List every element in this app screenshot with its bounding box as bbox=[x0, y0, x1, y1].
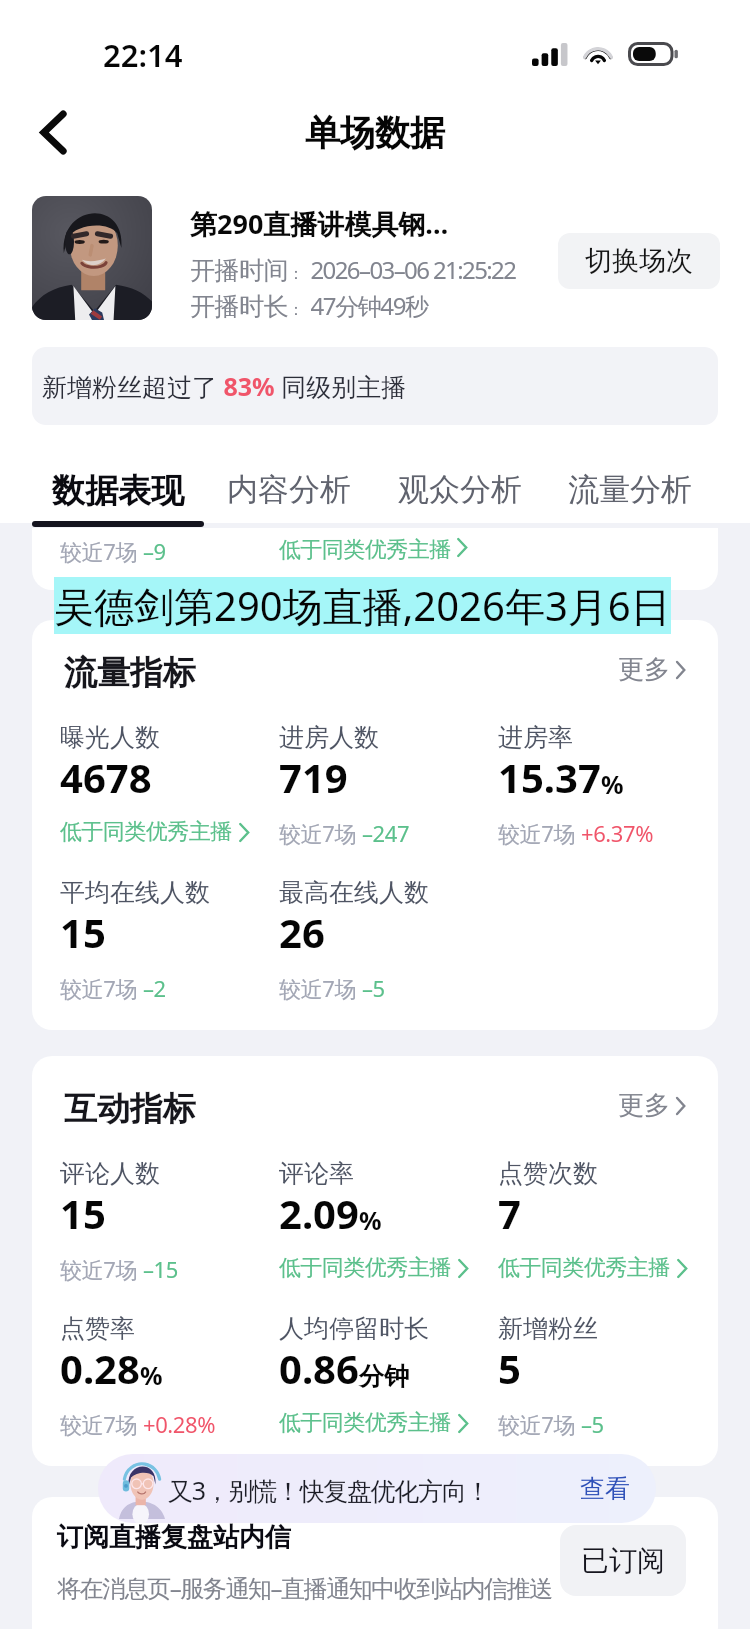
staticText: 进房人数 bbox=[279, 722, 379, 753]
staticText: 低于同类优秀主播 bbox=[279, 536, 451, 564]
staticText: 15.37 bbox=[498, 750, 601, 804]
button[interactable]: 低于同类优秀主播 bbox=[279, 1254, 468, 1282]
staticText: 开播时长： 47分钟49秒 bbox=[190, 289, 428, 322]
staticText: 人均停留时长 bbox=[279, 1313, 429, 1344]
button[interactable]: 新增粉丝超过了 83% 同级别主播 bbox=[32, 347, 718, 425]
staticText: 低于同类优秀主播 bbox=[498, 1254, 670, 1282]
staticText: 已订阅 bbox=[581, 1543, 665, 1578]
staticText: 内容分析 bbox=[227, 470, 351, 509]
staticText: 更多 bbox=[618, 1089, 670, 1122]
staticText: 数据表现 bbox=[52, 470, 184, 512]
staticText: 新增粉丝 bbox=[498, 1313, 598, 1344]
staticText: 5 bbox=[498, 1341, 521, 1395]
staticText: –5 bbox=[581, 1409, 604, 1439]
staticText: 查看 bbox=[580, 1473, 630, 1504]
staticText: 4678 bbox=[60, 750, 152, 804]
staticText: 开播时间： 2026–03–06 21:25:22 bbox=[190, 253, 516, 286]
staticText: 第290直播讲模具钢… bbox=[190, 205, 449, 242]
staticText: 互动指标 bbox=[64, 1088, 196, 1130]
staticText: 分钟 bbox=[359, 1361, 409, 1392]
button[interactable]: 内容分析 bbox=[203, 470, 375, 528]
button[interactable]: 低于同类优秀主播 bbox=[498, 1254, 687, 1282]
staticText: 15 bbox=[60, 905, 106, 959]
staticText: % bbox=[601, 767, 624, 801]
staticText: 更多 bbox=[618, 653, 670, 686]
staticText: –2 bbox=[143, 973, 166, 1003]
staticText: 单场数据 bbox=[0, 111, 750, 155]
staticText: 进房率 bbox=[498, 722, 573, 753]
staticText: 吴德剑第290场直播,2026年3月6日 bbox=[54, 578, 671, 633]
staticText: 将在消息页–服务通知–直播通知中收到站内信推送 bbox=[57, 1571, 552, 1604]
staticText: –5 bbox=[362, 973, 385, 1003]
staticText: 流量分析 bbox=[568, 470, 692, 509]
staticText: +0.28% bbox=[143, 1409, 216, 1439]
staticText: 较近7场 bbox=[498, 1409, 581, 1439]
staticText: 较近7场 bbox=[60, 973, 143, 1003]
staticText: 15 bbox=[60, 1186, 106, 1240]
staticText: 较近7场 bbox=[498, 818, 581, 848]
button[interactable]: Back bbox=[22, 101, 84, 163]
staticText: 评论人数 bbox=[60, 1158, 160, 1189]
staticText: 流量指标 bbox=[64, 652, 196, 694]
staticText: 订阅直播复盘站内信 bbox=[57, 1521, 291, 1554]
staticText: –15 bbox=[143, 1254, 178, 1284]
staticText: 曝光人数 bbox=[60, 722, 160, 753]
staticText: 低于同类优秀主播 bbox=[60, 818, 232, 846]
staticText: 较近7场 bbox=[279, 818, 362, 848]
button[interactable]: 观众分析 bbox=[374, 470, 546, 528]
button[interactable]: 流量分析 bbox=[544, 470, 716, 528]
staticText: 719 bbox=[279, 750, 348, 804]
staticText: 较近7场 bbox=[60, 1409, 143, 1439]
button[interactable]: 低于同类优秀主播 bbox=[279, 536, 467, 564]
staticText: 较近7场 bbox=[60, 1254, 143, 1284]
staticText: –247 bbox=[362, 818, 410, 848]
staticText: 低于同类优秀主播 bbox=[279, 1254, 451, 1282]
button[interactable]: 切换场次 bbox=[558, 233, 720, 289]
staticText: 7 bbox=[498, 1186, 521, 1240]
staticText: 点赞率 bbox=[60, 1313, 135, 1344]
staticText: 2.09 bbox=[279, 1186, 359, 1240]
button[interactable]: 又3，别慌！快复盘优化方向！ bbox=[98, 1454, 656, 1523]
staticText: 又3，别慌！快复盘优化方向！ bbox=[168, 1473, 490, 1507]
staticText: 0.28 bbox=[60, 1341, 140, 1395]
staticText: –9 bbox=[143, 536, 166, 566]
staticText: % bbox=[140, 1358, 163, 1392]
button[interactable]: 低于同类优秀主播 bbox=[60, 818, 249, 846]
staticText: 新增粉丝超过了 83% 同级别主播 bbox=[42, 369, 407, 403]
staticText: 观众分析 bbox=[398, 470, 522, 509]
staticText: +6.37% bbox=[581, 818, 654, 848]
button[interactable]: 数据表现 bbox=[32, 470, 204, 528]
staticText: 评论率 bbox=[279, 1158, 354, 1189]
staticText: 低于同类优秀主播 bbox=[279, 1409, 451, 1437]
staticText: 26 bbox=[279, 905, 325, 959]
button[interactable]: 已订阅 bbox=[560, 1525, 686, 1596]
staticText: 最高在线人数 bbox=[279, 877, 429, 908]
staticText: 点赞次数 bbox=[498, 1158, 598, 1189]
button[interactable]: 更多 bbox=[618, 653, 685, 686]
staticText: 较近7场 bbox=[279, 973, 362, 1003]
staticText: 平均在线人数 bbox=[60, 877, 210, 908]
button[interactable]: 更多 bbox=[618, 1089, 685, 1122]
staticText: 切换场次 bbox=[585, 244, 693, 278]
staticText: 22:14 bbox=[103, 34, 183, 76]
staticText: % bbox=[359, 1203, 382, 1237]
button[interactable]: 低于同类优秀主播 bbox=[279, 1409, 468, 1437]
staticText: 较近7场 bbox=[60, 536, 143, 566]
staticText: 0.86 bbox=[279, 1341, 359, 1395]
